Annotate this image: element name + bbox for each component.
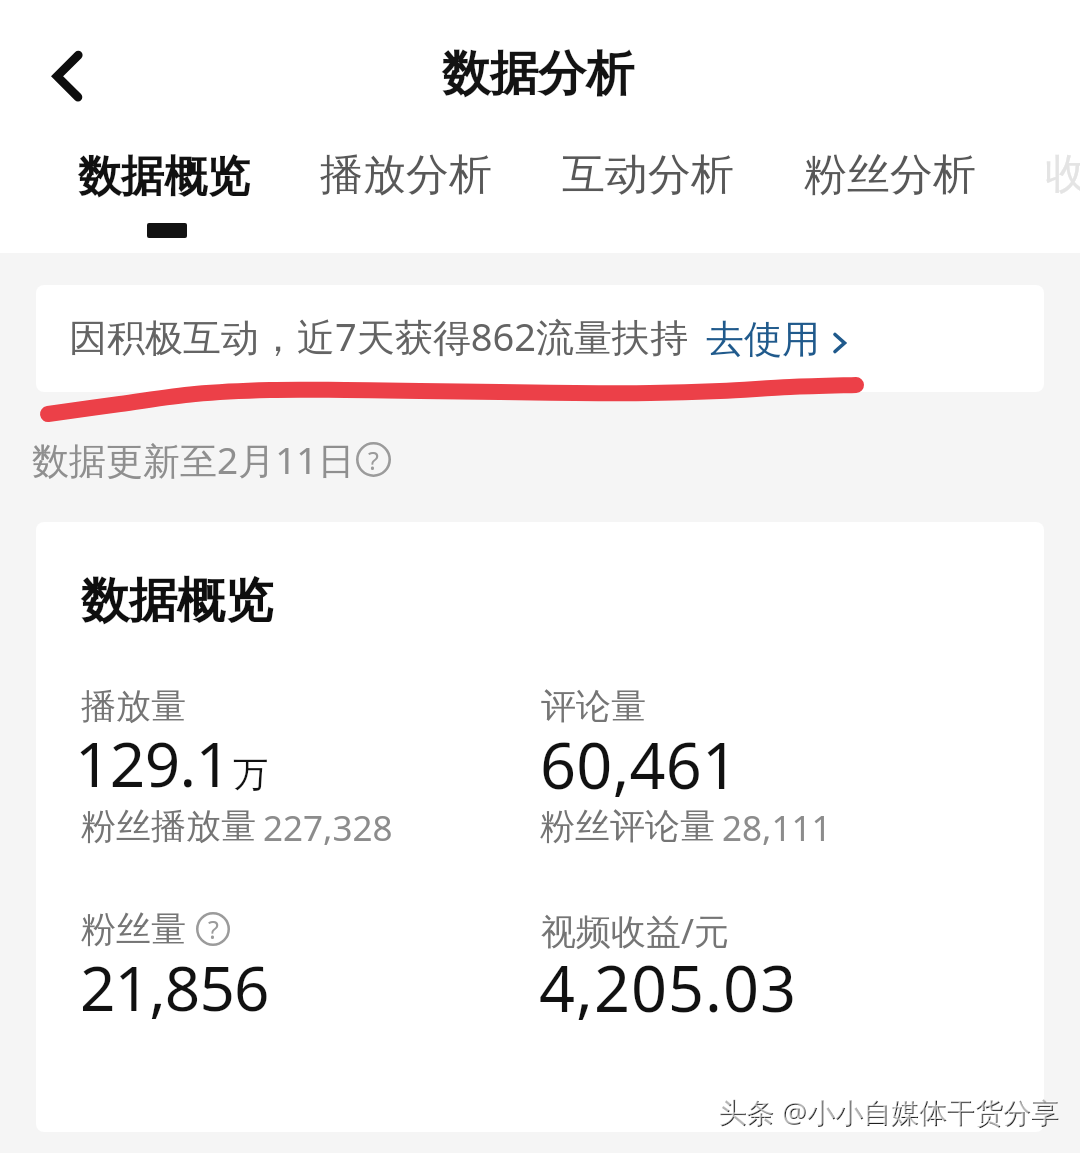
button[interactable]: 播放分析 bbox=[294, 118, 516, 233]
staticText: 227,328 bbox=[263, 804, 393, 852]
staticText: 因积极互动，近7天获得862流量扶持 bbox=[69, 310, 688, 362]
staticText: 129.1 bbox=[75, 721, 231, 805]
button[interactable]: Back bbox=[34, 40, 104, 110]
staticText: 收 bbox=[1045, 148, 1080, 201]
staticText: 粉丝分析 bbox=[804, 148, 976, 202]
staticText: ? bbox=[368, 443, 379, 477]
staticText: 数据分析 bbox=[442, 44, 634, 104]
staticText: 60,461 bbox=[540, 722, 739, 808]
button[interactable]: 因积极互动，近7天获得862流量扶持 bbox=[36, 285, 1044, 392]
staticText: 评论量 bbox=[541, 684, 646, 728]
staticText: 播放量 bbox=[81, 684, 186, 728]
button[interactable]: Data update info bbox=[26, 430, 400, 490]
button[interactable]: Follower count help bbox=[196, 912, 230, 946]
staticText: 万 bbox=[233, 752, 268, 796]
button[interactable]: 粉丝分析 bbox=[778, 118, 1000, 233]
button[interactable]: 收 bbox=[1040, 118, 1080, 233]
staticText: 头条 @小小自媒体干货分享 bbox=[719, 1093, 1060, 1131]
staticText: 粉丝评论量 bbox=[540, 804, 715, 848]
staticText: 数据概览 bbox=[81, 571, 273, 631]
staticText: 视频收益/元 bbox=[541, 907, 730, 955]
staticText: 21,856 bbox=[80, 945, 269, 1029]
button[interactable]: 数据概览 bbox=[52, 118, 274, 233]
staticText: 互动分析 bbox=[562, 148, 734, 202]
button[interactable]: 互动分析 bbox=[536, 118, 758, 233]
staticText: 播放分析 bbox=[320, 148, 492, 202]
staticText: 粉丝播放量 bbox=[81, 804, 256, 848]
staticText: 数据更新至2月11日 bbox=[32, 434, 355, 485]
staticText: 4,205.03 bbox=[539, 945, 797, 1031]
staticText: 粉丝量 bbox=[81, 907, 186, 951]
staticText: 头条 @小小自媒体干货分享 bbox=[718, 1092, 1059, 1130]
staticText: 去使用 bbox=[706, 315, 820, 363]
staticText: ? bbox=[208, 912, 219, 946]
staticText: 28,111 bbox=[722, 804, 832, 852]
staticText: 数据概览 bbox=[78, 150, 250, 204]
